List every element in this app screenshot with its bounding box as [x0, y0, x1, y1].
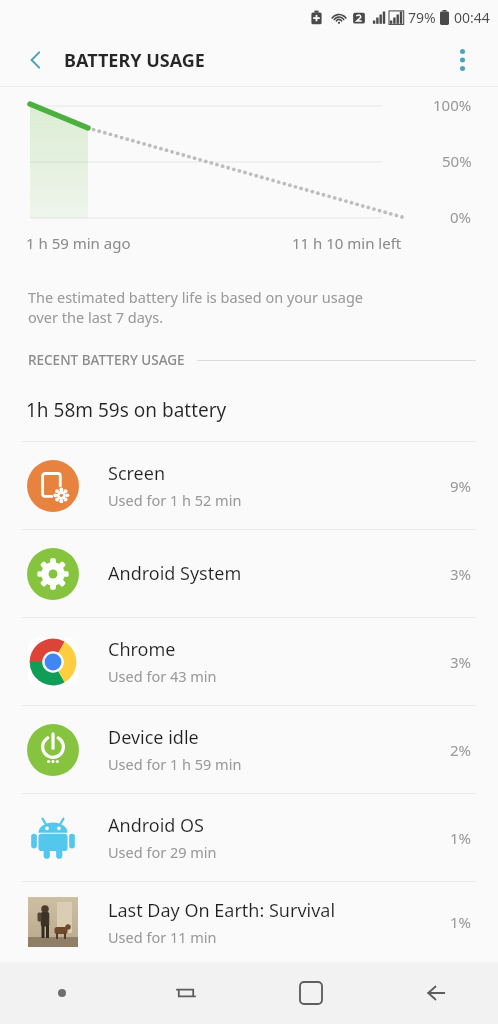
staticText: 1% — [450, 912, 472, 932]
staticText: 11 h 10 min left — [292, 233, 402, 253]
staticText: Used for 29 min — [108, 842, 217, 862]
staticText: RECENT BATTERY USAGE — [28, 351, 185, 369]
staticText: 1 h 59 min ago — [26, 233, 131, 253]
button[interactable]: Android System — [0, 530, 498, 617]
staticText: Last Day On Earth: Survival — [108, 898, 336, 923]
staticText: Used for 43 min — [108, 666, 217, 686]
button[interactable]: Back — [14, 38, 58, 82]
button[interactable]: Home — [248, 962, 373, 1024]
staticText: 79% — [408, 8, 436, 27]
staticText: 9% — [450, 476, 472, 496]
staticText: Screen — [108, 461, 166, 486]
staticText: 1% — [450, 828, 472, 848]
staticText: Used for 11 min — [108, 927, 217, 947]
button[interactable]: More options — [442, 40, 482, 80]
button[interactable]: Android OS — [0, 794, 498, 881]
button[interactable]: Show keyboard — [0, 962, 124, 1024]
staticText: 50% — [442, 151, 472, 171]
staticText: Android System — [108, 561, 242, 586]
button[interactable]: Last Day On Earth: Survival — [0, 882, 498, 962]
staticText: Device idle — [108, 725, 199, 750]
staticText: Chrome — [108, 637, 176, 662]
staticText: BATTERY USAGE — [64, 48, 205, 73]
staticText: 3% — [450, 652, 472, 672]
staticText: 1h 58m 59s on battery — [26, 397, 227, 423]
staticText: 3% — [450, 564, 472, 584]
staticText: 00:44 — [454, 8, 490, 27]
staticText: Used for 1 h 52 min — [108, 490, 242, 510]
staticText: 100% — [433, 95, 472, 115]
button[interactable]: Chrome — [0, 618, 498, 705]
staticText: Android OS — [108, 813, 204, 838]
staticText: Used for 1 h 59 min — [108, 754, 242, 774]
staticText: 0% — [450, 207, 472, 227]
button[interactable]: Device idle — [0, 706, 498, 793]
button[interactable]: Screen — [0, 442, 498, 529]
staticText: 2% — [450, 740, 472, 760]
button[interactable]: Back — [373, 962, 498, 1024]
staticText: The estimated battery life is based on y… — [28, 287, 363, 327]
button[interactable]: Recent apps — [124, 962, 248, 1024]
